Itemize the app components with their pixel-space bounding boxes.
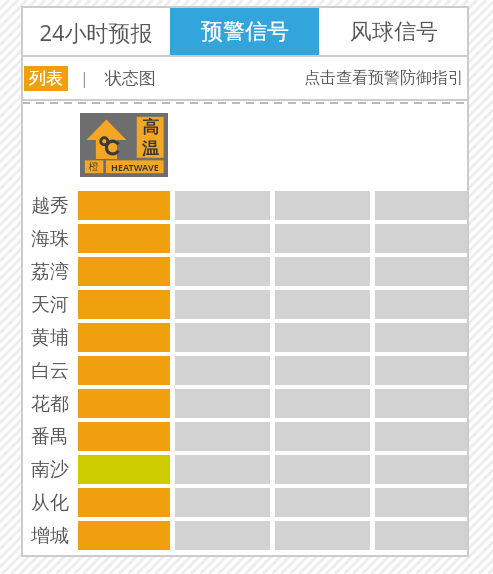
staticText: 橙 <box>89 160 99 173</box>
staticText: 温 <box>142 138 159 158</box>
button[interactable]: 荔湾 <box>22 257 468 286</box>
staticText: 风球信号 <box>350 18 438 46</box>
button[interactable]: 天河 <box>22 290 468 319</box>
button[interactable]: 南沙 <box>22 455 468 484</box>
button[interactable]: 番禺 <box>22 422 468 451</box>
button[interactable]: 风球信号 <box>319 7 468 56</box>
staticText: 花都 <box>31 392 69 416</box>
button[interactable]: 增城 <box>22 521 468 550</box>
staticText: 预警信号 <box>201 18 289 46</box>
staticText: 越秀 <box>31 194 69 218</box>
staticText: 荔湾 <box>31 260 69 284</box>
button[interactable]: 高温橙色预警信号 <box>80 113 168 177</box>
staticText: 海珠 <box>31 227 69 251</box>
staticText: | <box>80 67 89 89</box>
button[interactable]: 花都 <box>22 389 468 418</box>
staticText: 24小时预报 <box>39 17 153 47</box>
staticText: 高 <box>142 117 159 138</box>
staticText: 南沙 <box>31 458 69 482</box>
button[interactable]: 列表 <box>24 66 68 91</box>
staticText: 白云 <box>31 359 69 383</box>
staticText: 黄埔 <box>31 326 69 350</box>
staticText: 增城 <box>31 524 69 548</box>
staticText: 从化 <box>31 491 69 515</box>
button[interactable]: 黄埔 <box>22 323 468 352</box>
button[interactable]: 24小时预报 <box>22 7 170 56</box>
staticText: 状态图 <box>105 68 156 89</box>
button[interactable]: 从化 <box>22 488 468 517</box>
staticText: 番禺 <box>31 425 69 449</box>
button[interactable]: 状态图 <box>101 66 160 91</box>
button[interactable]: 预警信号 <box>170 7 319 56</box>
staticText: 列表 <box>29 68 63 89</box>
button[interactable]: 海珠 <box>22 224 468 253</box>
staticText: 天河 <box>31 293 69 317</box>
button[interactable]: 白云 <box>22 356 468 385</box>
staticText: 点击查看预警防御指引 <box>304 68 464 88</box>
button[interactable]: 点击查看预警防御指引 <box>304 66 468 90</box>
staticText: HEATWAVE <box>111 161 159 173</box>
button[interactable]: 越秀 <box>22 191 468 220</box>
